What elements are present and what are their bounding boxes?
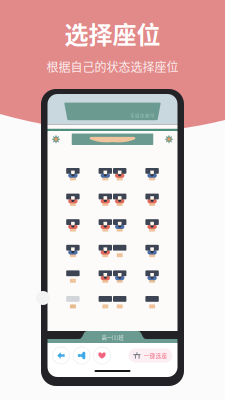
staticText: 一键选座 [143, 351, 167, 359]
button[interactable]: Back [52, 347, 69, 364]
staticText: 选择座位 [64, 16, 160, 51]
button[interactable]: Favourite [93, 347, 110, 364]
staticText: 根据自己的状态选择座位 [46, 58, 178, 75]
staticText: 高一(1)班 [101, 333, 123, 341]
staticText: 多媒体教学 [130, 112, 155, 119]
button[interactable]: 一键选座 [128, 348, 172, 362]
button[interactable]: Share [73, 347, 90, 364]
